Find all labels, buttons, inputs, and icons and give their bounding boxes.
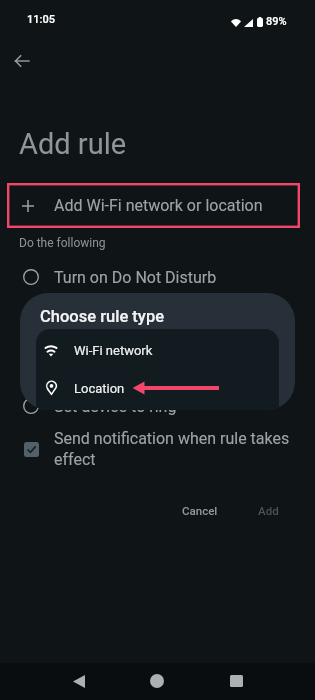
button[interactable]: Home bbox=[142, 666, 172, 696]
staticText: Add rule bbox=[19, 127, 127, 161]
staticText: Cancel bbox=[182, 504, 218, 517]
button[interactable]: Cancel bbox=[170, 496, 230, 525]
button[interactable]: Add bbox=[246, 496, 291, 525]
button[interactable]: Location bbox=[36, 369, 279, 407]
staticText: 11:05 bbox=[27, 13, 55, 26]
button[interactable]: Set device to ring bbox=[0, 393, 315, 419]
staticText: 89% bbox=[266, 15, 287, 28]
button[interactable]: Back bbox=[8, 47, 36, 75]
button[interactable]: Turn on Do Not Disturb bbox=[0, 264, 315, 290]
staticText: Choose rule type bbox=[40, 307, 165, 326]
staticText: Add Wi-Fi network or location bbox=[54, 196, 263, 215]
staticText: Turn on Do Not Disturb bbox=[54, 268, 217, 287]
button[interactable]: Recent apps bbox=[221, 666, 251, 696]
staticText: Add bbox=[258, 504, 279, 517]
button[interactable]: Wi-Fi network bbox=[36, 331, 279, 369]
button[interactable]: Back bbox=[64, 666, 94, 696]
staticText: Set device to ring bbox=[54, 397, 177, 416]
button[interactable]: Send notification when rule takes effect bbox=[0, 429, 299, 469]
button[interactable]: Add Wi-Fi network or location bbox=[0, 183, 315, 228]
staticText: Send notification when rule takes effect bbox=[54, 429, 299, 469]
staticText: Do the following bbox=[19, 236, 106, 250]
staticText: Location bbox=[74, 381, 125, 396]
staticText: Wi-Fi network bbox=[74, 343, 153, 358]
